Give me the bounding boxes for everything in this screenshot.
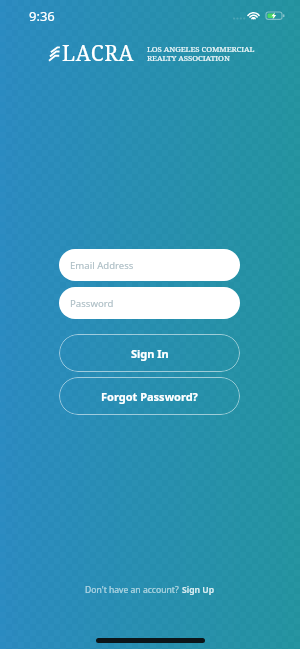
staticText: Email Address — [70, 259, 134, 272]
staticText: LOS ANGELES COMMERCIAL REALTY ASSOCIATIO… — [147, 44, 255, 63]
staticText: Password — [70, 297, 114, 310]
staticText: Sign In — [131, 346, 169, 361]
button[interactable]: Forgot Password? — [59, 377, 240, 415]
staticText: Forgot Password? — [101, 389, 198, 404]
other: Wi-Fi — [247, 11, 260, 20]
staticText: 9:36 — [29, 7, 55, 25]
staticText: LACRA — [62, 39, 134, 68]
staticText: Don't have an account? — [85, 584, 181, 596]
other: Battery charging — [266, 12, 284, 20]
button[interactable]: Sign Up — [181, 581, 216, 599]
button[interactable]: Email Address — [59, 249, 240, 281]
other: Cellular signal — [233, 16, 246, 21]
staticText: Sign Up — [182, 584, 215, 596]
button[interactable]: Password — [59, 287, 240, 319]
button[interactable]: Sign In — [59, 334, 240, 372]
